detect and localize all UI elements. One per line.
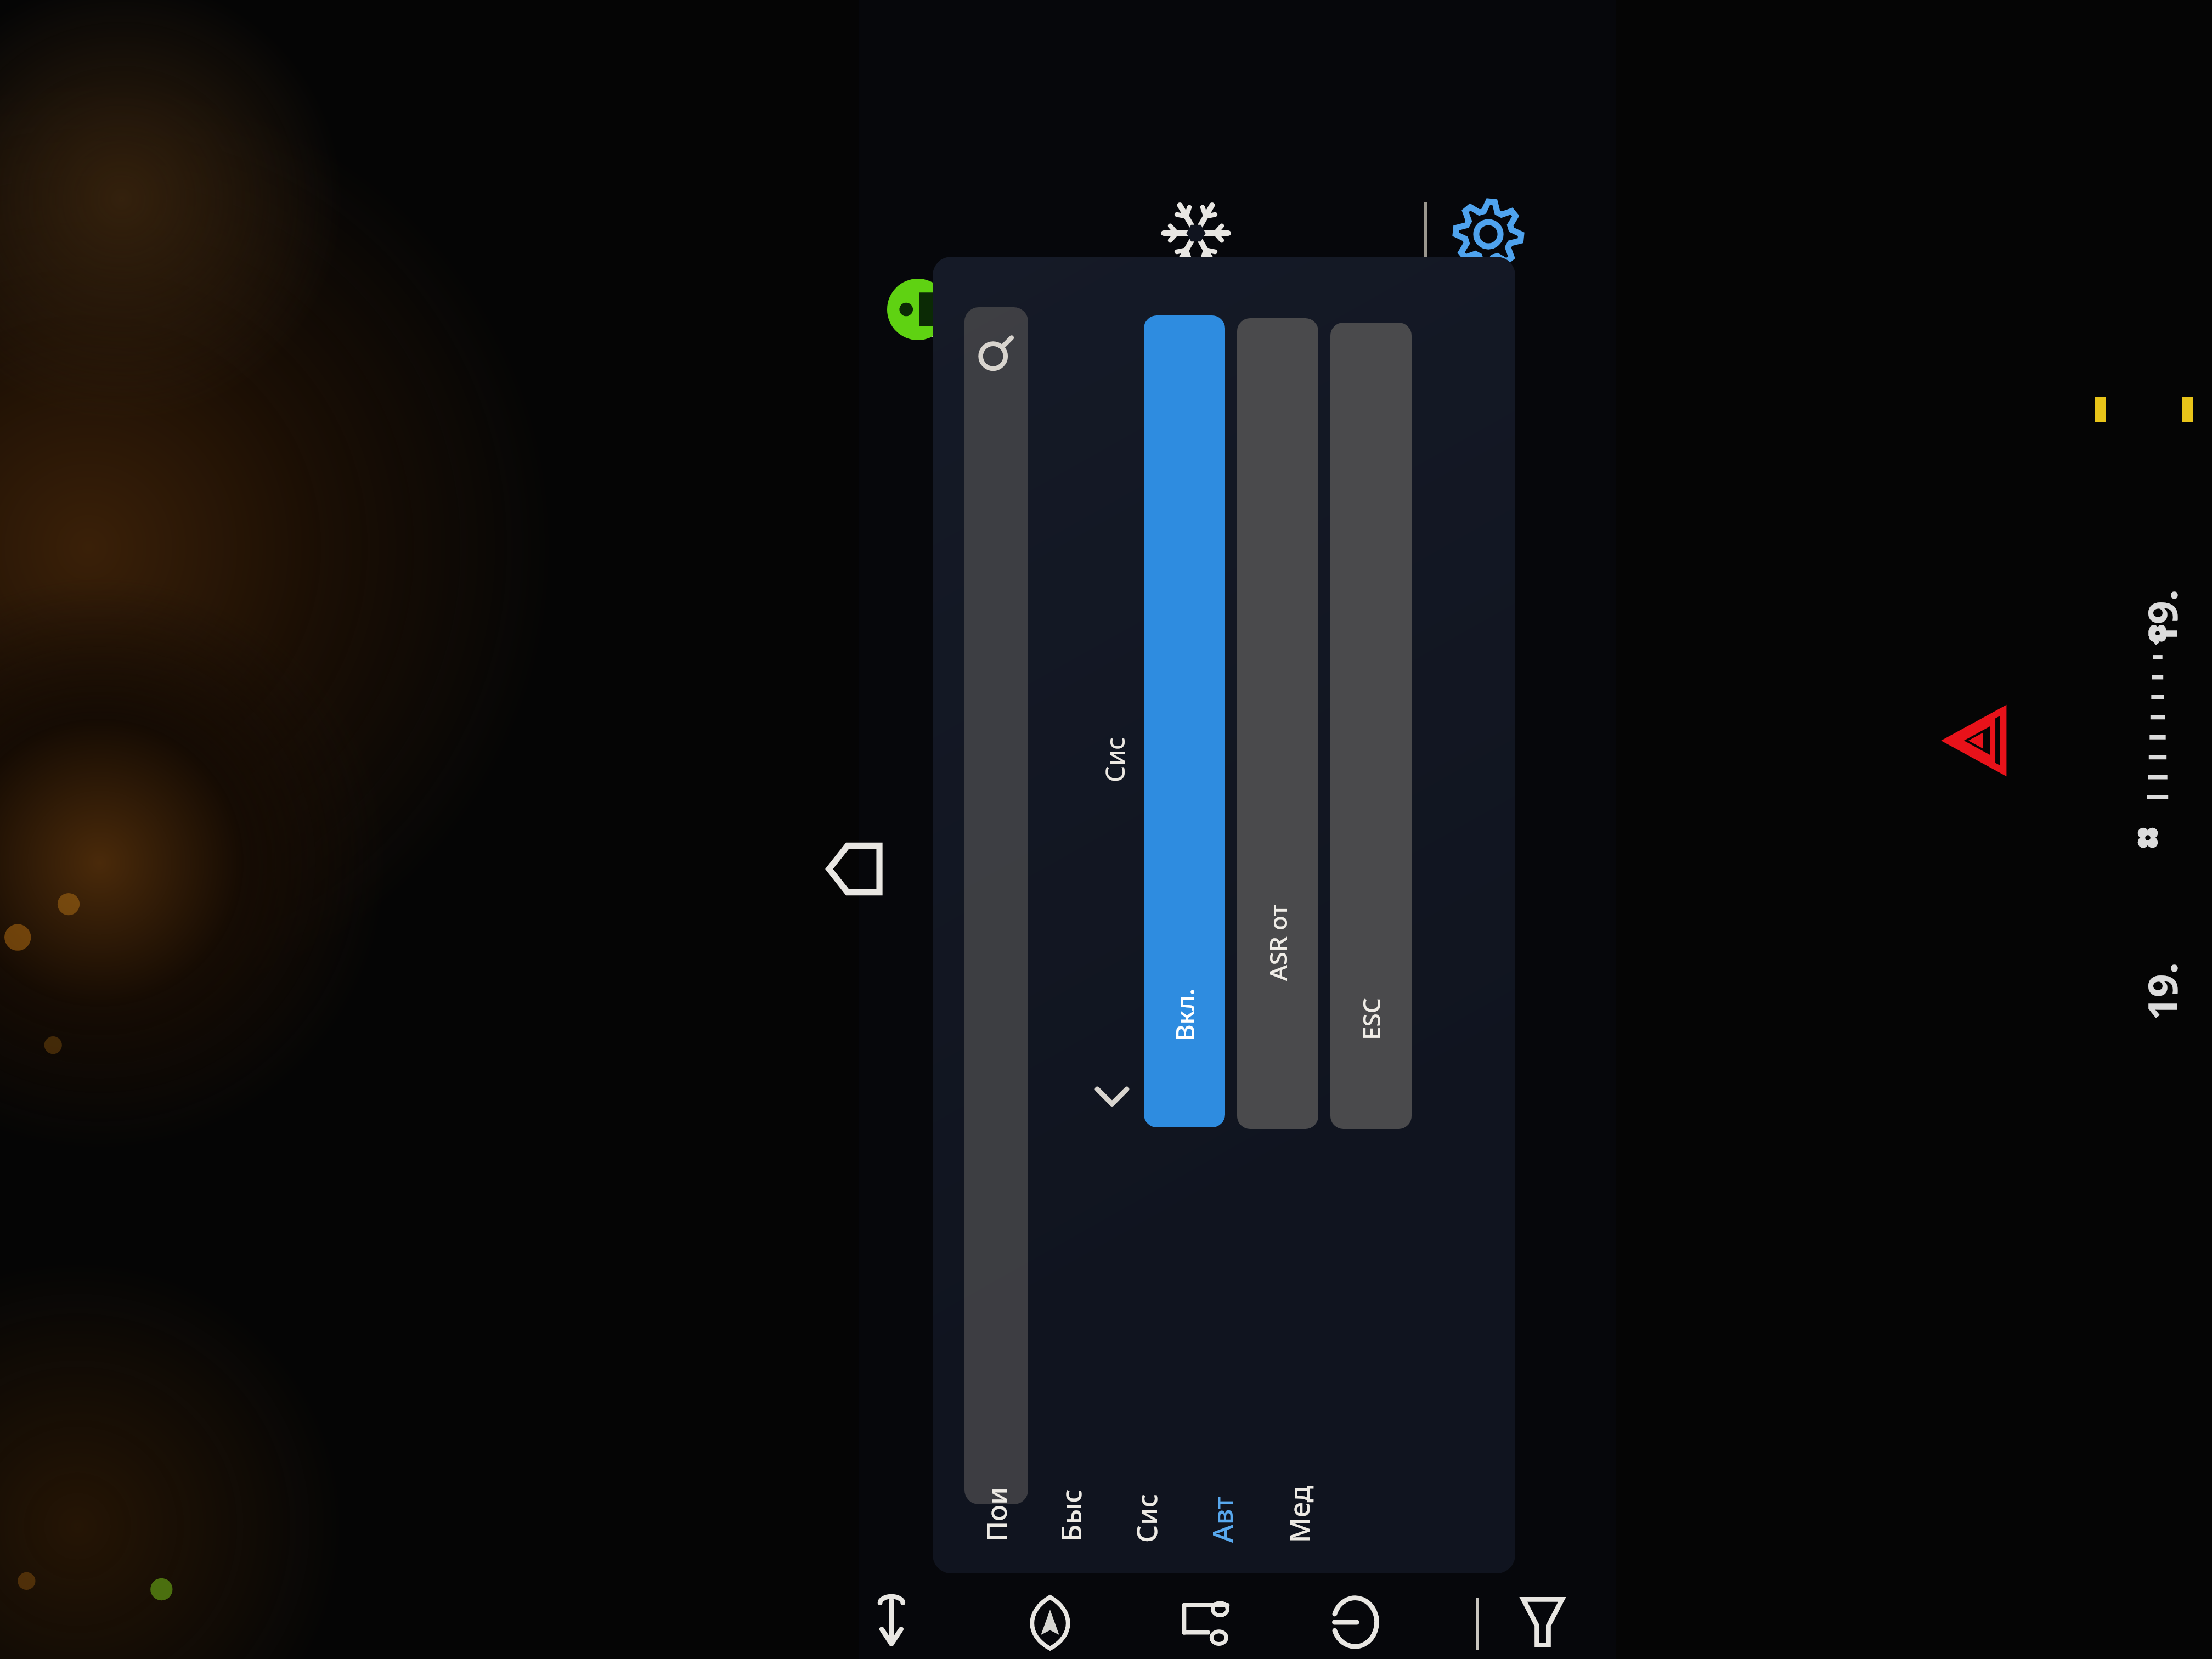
staticText: ASR отключен [1261,900,1294,981]
staticText: Система стабилизации (ESC) [1097,730,1132,782]
button[interactable]: Media app [887,279,949,340]
staticText: Медиа [1280,1481,1318,1543]
staticText: 19.0° [2134,955,2190,1020]
button[interactable]: Вкл. [1144,315,1225,1127]
button[interactable]: Media [1178,1594,1235,1651]
button[interactable]: Автомобиль [1192,1224,1253,1543]
button[interactable]: Volume [1514,1594,1571,1651]
button[interactable] [964,307,1028,1504]
staticText: Вкл. [1167,988,1202,1041]
button[interactable]: Быстрые настройки [1040,1125,1102,1542]
button[interactable]: Back [1089,1073,1135,1119]
staticText: Быстрые настройки [1052,1480,1090,1542]
button[interactable]: Climate [1158,195,1234,272]
button[interactable]: ESC Off [1330,323,1412,1129]
button[interactable]: Back [864,1594,921,1651]
staticText: Поиск в Настройках [978,1480,1015,1542]
staticText: Автомобиль [1204,1481,1241,1543]
staticText: ESC Off [1355,959,1387,1040]
button[interactable]: Navigation [1022,1594,1079,1651]
staticText: 21:08 [937,269,978,346]
staticText: Система [1128,1481,1165,1543]
staticText: 19.0° [2134,582,2190,647]
button[interactable]: Медиа [1268,1312,1330,1543]
button[interactable]: Home [823,838,884,900]
button[interactable]: Power [1327,1594,1384,1651]
button[interactable]: ASR отключен [1237,318,1318,1129]
button[interactable]: Система [1116,1274,1177,1543]
button[interactable]: Settings [1453,199,1524,270]
